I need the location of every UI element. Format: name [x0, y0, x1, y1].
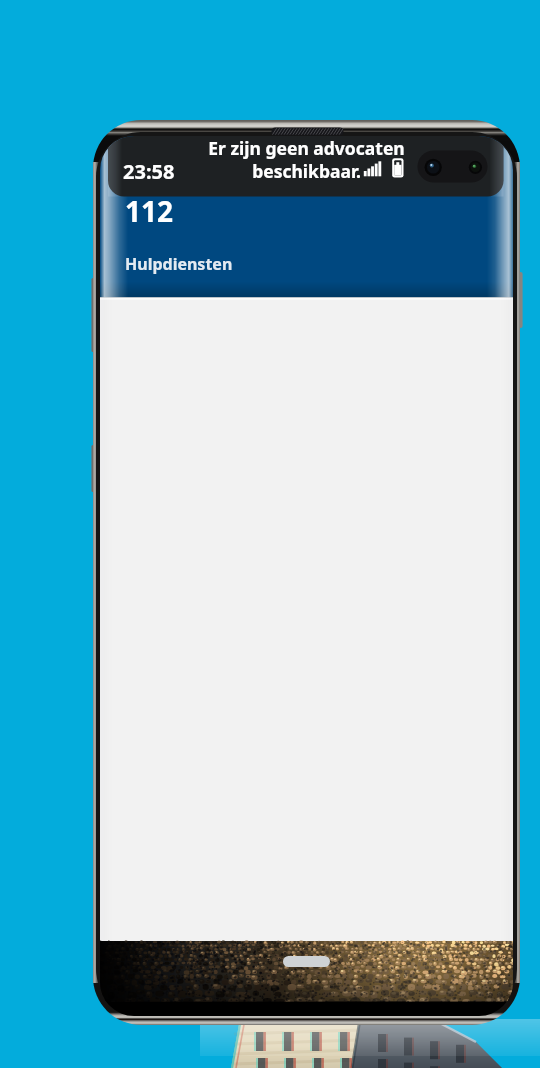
button[interactable]: Home [283, 956, 330, 967]
button[interactable]: 23:58 [123, 158, 179, 184]
button[interactable]: 112 [125, 192, 185, 224]
staticText: 112 [125, 192, 174, 224]
button[interactable]: Hulpdiensten [125, 253, 255, 277]
staticText: 23:58 [123, 158, 175, 184]
staticText: Er zijn geen advocaten beschikbaar. [199, 136, 414, 183]
staticText: Hulpdiensten [125, 253, 233, 275]
button[interactable]: Er zijn geen advocaten beschikbaar. [199, 136, 414, 183]
